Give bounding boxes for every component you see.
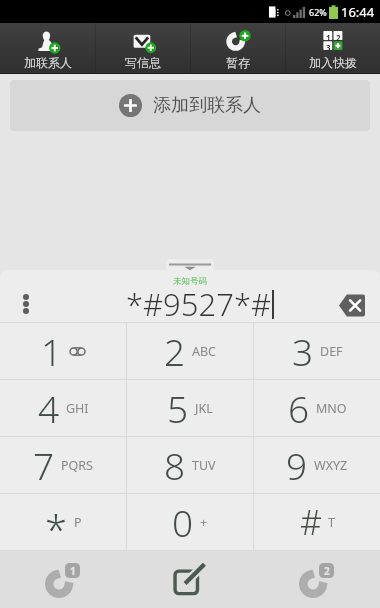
staticText: WXYZ [314,457,348,474]
staticText: 1 [326,32,331,41]
staticText: 2 [164,326,186,376]
staticText: JKL [195,400,213,417]
staticText: 4 [38,383,60,433]
staticText: 8 [164,440,186,490]
button[interactable]: 3 [254,323,380,379]
staticText: # [300,499,322,545]
button[interactable]: 8 [127,437,253,493]
staticText: 1 [70,564,76,578]
staticText: PQRS [61,457,93,474]
staticText: 0 [172,497,194,547]
staticText: GHI [66,400,89,417]
staticText: 1 [41,326,63,376]
button[interactable]: 写信息 [96,23,190,74]
staticText: *#9527*# [126,283,272,322]
button[interactable]: 1 [0,323,126,379]
button[interactable]: 6 [254,380,380,436]
button[interactable]: 0 [127,494,253,550]
staticText: 暂存 [226,55,250,70]
staticText: * [45,502,68,556]
button[interactable]: Call with SIM 1 [0,551,126,608]
button[interactable]: # [254,494,380,550]
staticText: 写信息 [125,55,161,70]
button[interactable]: 4 [0,380,126,436]
button[interactable]: Backspace [335,290,369,320]
staticText: 3 [326,42,331,51]
button[interactable]: 暂存 [191,23,285,74]
button[interactable]: More options [11,289,41,319]
staticText: 2 [336,32,341,41]
staticText: ABC [192,343,217,360]
staticText: 3 [292,326,314,376]
button[interactable]: Hide dialpad [166,259,214,270]
button[interactable]: 9 [254,437,380,493]
staticText: 16:44 [341,3,375,21]
staticText: DEF [320,343,343,360]
staticText: TUV [192,457,216,474]
staticText: 5 [167,383,189,433]
staticText: 2 [324,564,330,578]
button[interactable]: 7 [0,437,126,493]
button[interactable]: 添加到联系人 [10,80,370,131]
staticText: P [74,514,82,531]
staticText: 7 [33,440,55,490]
staticText: 加联系人 [24,55,72,70]
staticText: 加入快拨 [309,55,357,70]
button[interactable]: Call with SIM 2 [253,551,380,608]
staticText: MNO [316,400,347,417]
staticText: 未知号码 [173,276,207,287]
staticText: 6 [288,383,310,433]
button[interactable]: New message [126,551,253,608]
button[interactable]: 2 [127,323,253,379]
staticText: T [328,514,335,531]
button[interactable]: 1 [286,23,380,74]
staticText: 62% [309,6,327,18]
button[interactable]: * [0,494,126,550]
staticText: 9 [286,440,308,490]
button[interactable]: 加联系人 [0,23,95,74]
staticText: 添加到联系人 [153,94,261,117]
button[interactable]: 5 [127,380,253,436]
staticText: + [200,514,208,531]
